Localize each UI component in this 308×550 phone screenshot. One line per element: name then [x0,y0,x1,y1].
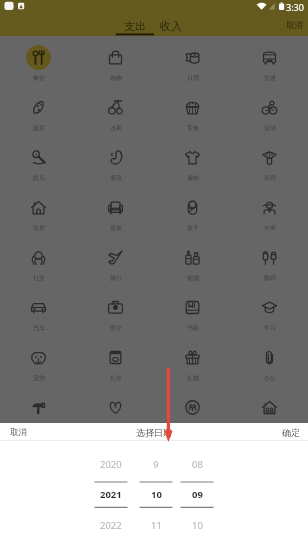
staticText: 支出 [124,19,146,33]
staticText: 2021 [100,488,122,501]
staticText: 通讯 [110,174,122,182]
button[interactable]: 确定 [282,423,300,440]
staticText: 居家 [110,224,122,232]
button[interactable]: 取消 [286,14,303,36]
button[interactable]: 汽车 [0,286,77,336]
button[interactable]: 通讯 [77,136,154,186]
button[interactable]: 水果 [77,86,154,136]
button[interactable]: 学习 [231,286,308,336]
staticText: 日用 [187,74,199,82]
staticText: 美容 [264,174,276,182]
button[interactable]: 娱乐 [0,136,77,186]
button[interactable]: 维修 [0,386,77,436]
button[interactable]: 支出 [117,14,153,36]
staticText: 10 [151,488,162,501]
button[interactable]: 居家 [77,186,154,236]
staticText: 10 [192,519,203,532]
staticText: 学习 [264,324,276,332]
button[interactable]: 住房 [0,186,77,236]
staticText: 交通 [264,74,276,82]
button[interactable]: 零食 [154,86,231,136]
button[interactable]: 取消 [10,423,27,440]
button[interactable]: 孩子 [154,186,231,236]
staticText: 礼金 [110,374,122,382]
staticText: 3:30 [286,1,304,13]
staticText: 餐饮 [33,74,45,82]
staticText: 09 [192,488,203,501]
button[interactable]: 购物 [77,36,154,86]
button[interactable]: 公益 [77,386,154,436]
staticText: 蔬菜 [33,124,45,132]
staticText: 医疗 [110,324,122,332]
staticText: 11 [151,519,162,532]
staticText: 零食 [187,124,199,132]
staticText: 购物 [110,74,122,82]
staticText: 孩子 [187,224,199,232]
button[interactable]: 医疗 [77,286,154,336]
staticText: 收入 [160,19,182,33]
staticText: 08 [192,458,203,471]
button[interactable]: 蔬菜 [0,86,77,136]
button[interactable]: 社交 [0,236,77,286]
button[interactable]: 书籍 [154,286,231,336]
button[interactable]: 收入 [153,14,189,36]
button[interactable]: 餐饮 [0,36,77,86]
staticText: 汽车 [33,324,45,332]
staticText: 旅行 [110,274,122,282]
staticText: 运动 [264,124,276,132]
button[interactable]: 运动 [231,86,308,136]
staticText: 宠物 [33,374,45,382]
staticText: 礼物 [187,374,199,382]
staticText: 水果 [110,124,122,132]
staticText: 9 [153,458,159,471]
button[interactable]: 烟酒 [154,236,231,286]
button[interactable]: 办公 [231,336,308,386]
staticText: 取消 [10,427,27,438]
staticText: 确定 [282,427,300,438]
button[interactable]: 美容 [231,136,308,186]
staticText: 服饰 [187,174,199,182]
staticText: 2022 [100,519,122,532]
button[interactable]: 交通 [231,36,308,86]
staticText: 住房 [33,224,45,232]
staticText: 长辈 [264,224,276,232]
staticText: 办公 [264,374,276,382]
staticText: 娱乐 [33,174,45,182]
button[interactable]: 数码 [231,236,308,286]
staticText: 社交 [33,274,45,282]
staticText: 书籍 [187,324,199,332]
button[interactable]: 长辈 [231,186,308,236]
button[interactable]: 日用 [154,36,231,86]
staticText: 2020 [100,458,122,471]
button[interactable]: 宠物 [0,336,77,386]
staticText: 烟酒 [187,274,199,282]
staticText: 数码 [264,274,276,282]
button[interactable]: 旅行 [77,236,154,286]
staticText: 选择日期 [136,427,172,438]
button[interactable]: 礼物 [154,336,231,386]
button[interactable]: 其他 [231,386,308,436]
button[interactable]: 保险 [154,386,231,436]
button[interactable]: 服饰 [154,136,231,186]
button[interactable]: 礼金 [77,336,154,386]
staticText: 取消 [286,20,303,31]
